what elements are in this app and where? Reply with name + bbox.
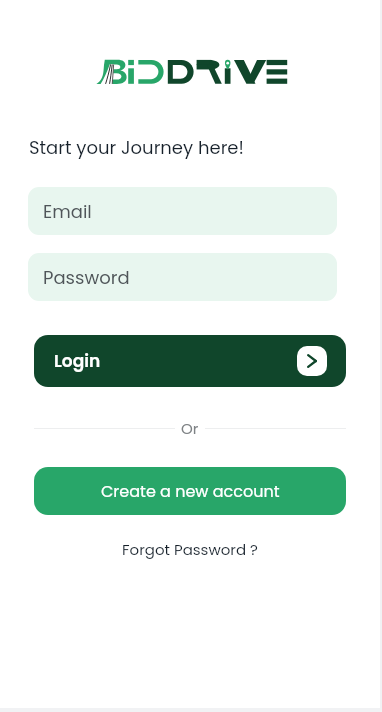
button[interactable]: Password bbox=[28, 253, 337, 301]
button[interactable]: Forgot Password ? bbox=[112, 536, 268, 562]
staticText: Login bbox=[54, 349, 101, 373]
button[interactable]: Create a new account bbox=[34, 467, 346, 515]
staticText: Email bbox=[43, 199, 92, 224]
other: Continue bbox=[297, 346, 327, 376]
staticText: Start your Journey here! bbox=[29, 135, 244, 160]
staticText: Password bbox=[43, 265, 130, 290]
staticText: Or bbox=[181, 418, 199, 439]
button[interactable]: Email bbox=[28, 187, 337, 235]
staticText: Create a new account bbox=[101, 480, 280, 502]
staticText: Forgot Password ? bbox=[122, 539, 258, 560]
button[interactable]: Login bbox=[34, 335, 346, 387]
